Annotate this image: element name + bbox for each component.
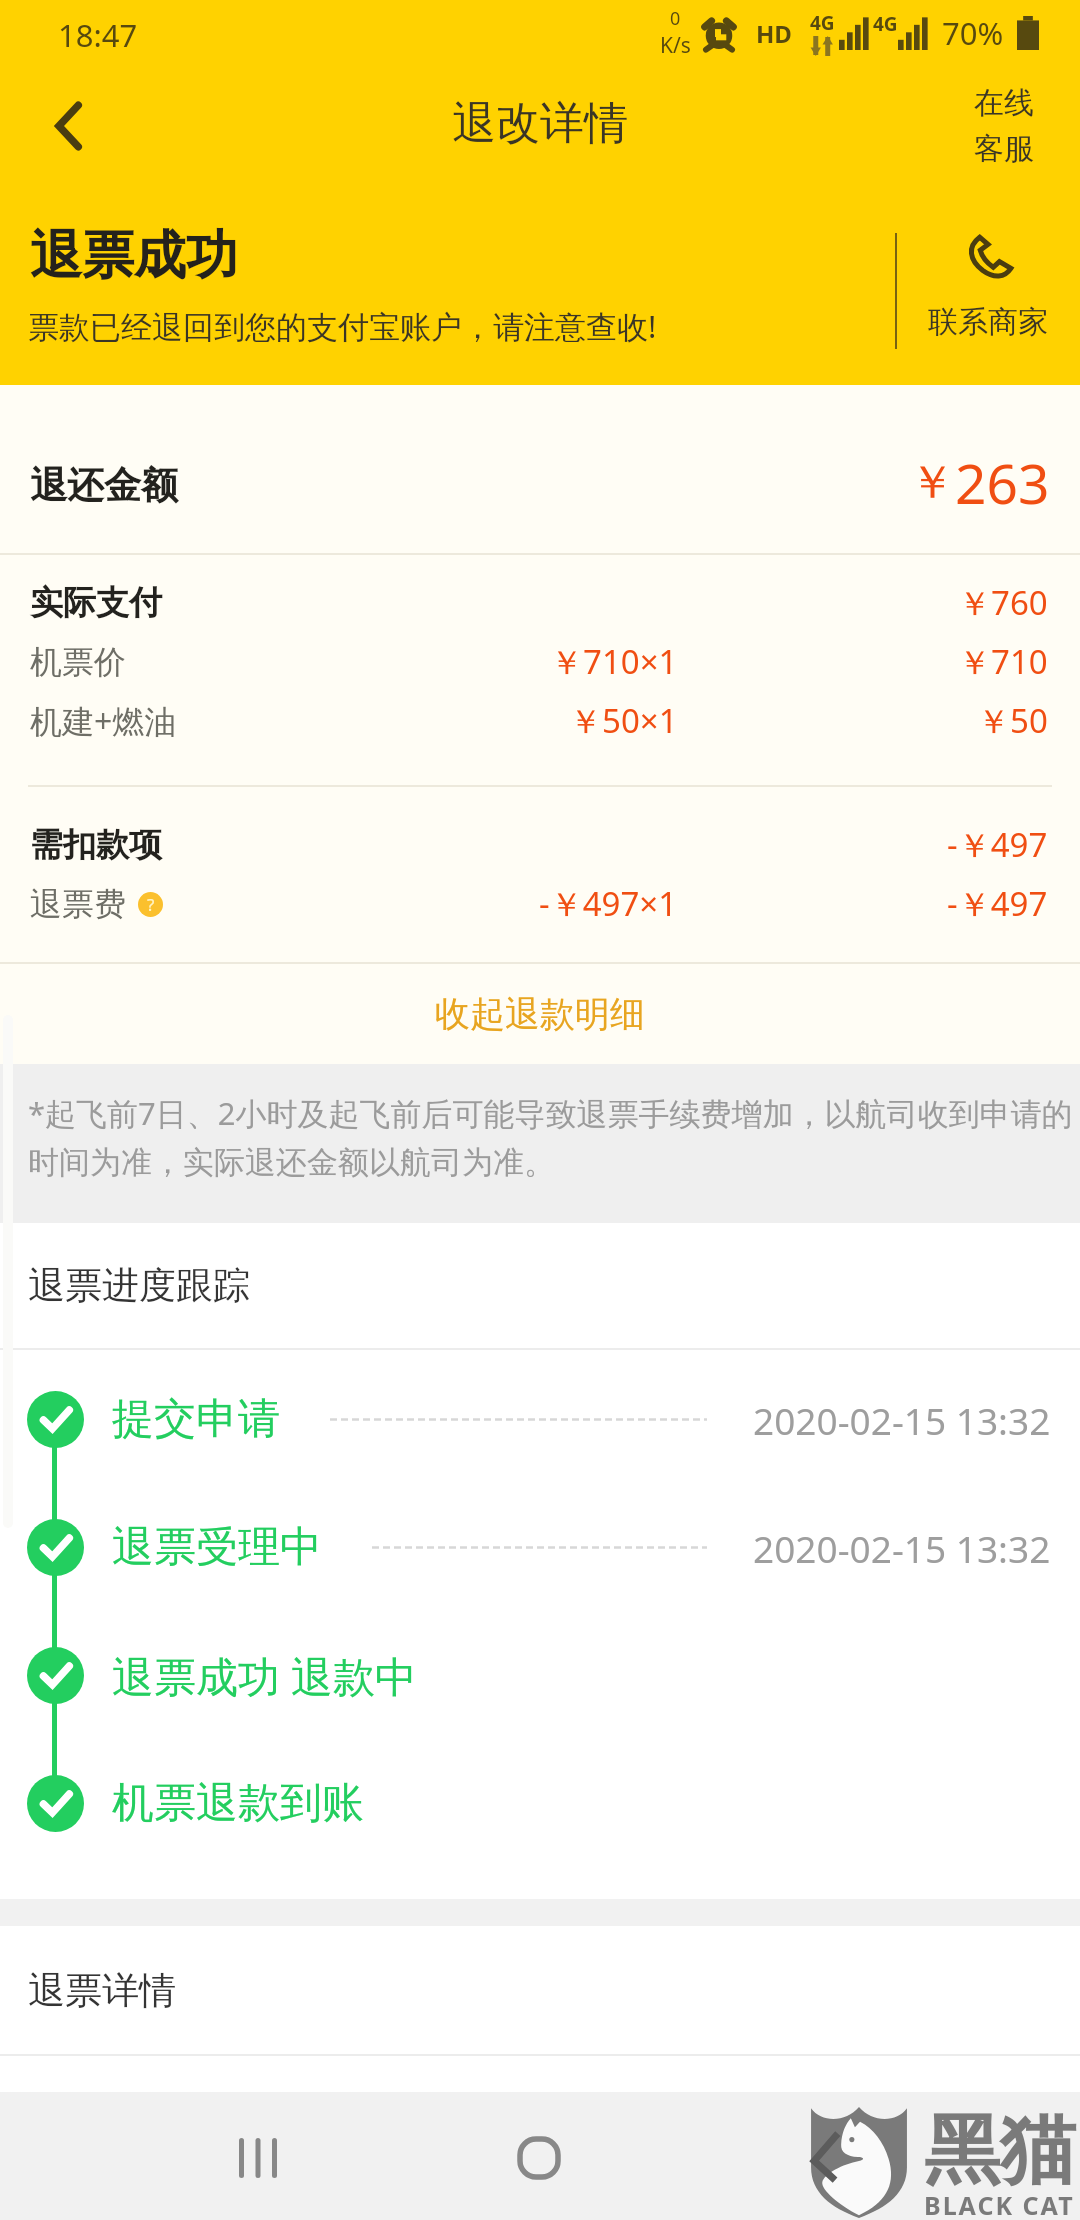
staticText: 客服 xyxy=(974,130,1034,168)
button[interactable]: 在线 xyxy=(974,84,1034,168)
staticText: 2020-02-15 13:32 xyxy=(753,1395,1051,1445)
staticText: 在线 xyxy=(974,84,1034,122)
staticText: 退票详情 xyxy=(28,1967,176,2014)
button[interactable]: 联系商家 xyxy=(912,233,1064,341)
staticText: 机票退款到账 xyxy=(112,1777,364,1830)
staticText: 联系商家 xyxy=(928,303,1048,341)
staticText: -￥497 xyxy=(947,881,1048,926)
staticText: ￥710 xyxy=(958,639,1048,684)
staticText: ￥50×1 xyxy=(569,698,678,743)
staticText: 收起退款明细 xyxy=(435,992,645,1036)
button[interactable]: Home xyxy=(499,2118,579,2198)
staticText: 4G xyxy=(810,10,835,36)
button[interactable]: 退票成功 退款中 xyxy=(0,1611,1080,1739)
button[interactable]: 退票受理中 xyxy=(0,1483,1080,1611)
staticText: ￥710×1 xyxy=(550,639,678,684)
staticText: 机票价 xyxy=(30,642,126,682)
staticText: 18:47 xyxy=(58,14,138,56)
staticText: 退票成功 退款中 xyxy=(112,1647,417,1704)
staticText: ￥760 xyxy=(958,580,1048,625)
button[interactable]: 提交申请 xyxy=(0,1355,1080,1483)
staticText: 需扣款项 xyxy=(30,824,162,866)
staticText: 退还金额 xyxy=(30,462,178,509)
staticText: 2020-02-15 13:32 xyxy=(753,1523,1051,1573)
staticText: 70% xyxy=(942,12,1004,54)
staticText: 黑猫 xyxy=(924,2103,1076,2199)
staticText: -￥497×1 xyxy=(539,881,678,926)
staticText: 4G xyxy=(873,11,898,37)
staticText: 机建+燃油 xyxy=(30,699,177,743)
staticText: 退改详情 xyxy=(452,96,628,151)
staticText: ￥ xyxy=(909,454,955,512)
button[interactable]: Recent apps xyxy=(218,2118,298,2198)
button[interactable]: Back xyxy=(25,81,115,171)
button[interactable]: 收起退款明细 xyxy=(0,964,1080,1064)
button[interactable]: Help xyxy=(138,892,163,917)
staticText: 退票费 xyxy=(30,884,126,924)
staticText: ? xyxy=(147,893,155,916)
staticText: BLACK CAT xyxy=(924,2188,1075,2220)
staticText: *起飞前7日、2小时及起飞前后可能导致退票手续费增加，以航司收到申请的 时间为准… xyxy=(28,1092,1073,1182)
staticText: 提交申请 xyxy=(112,1393,280,1446)
staticText: -￥497 xyxy=(947,822,1048,867)
button[interactable]: 退票详情 xyxy=(0,1926,1080,2054)
button[interactable]: 退票进度跟踪 xyxy=(0,1223,1080,1348)
staticText: 实际支付 xyxy=(30,582,162,624)
staticText: 退票受理中 xyxy=(112,1521,322,1574)
staticText: K/s xyxy=(660,31,691,60)
staticText: 票款已经退回到您的支付宝账户，请注意查收! xyxy=(28,305,657,347)
staticText: 退票进度跟踪 xyxy=(28,1262,250,1309)
button[interactable]: 机票退款到账 xyxy=(0,1739,1080,1867)
staticText: 退票成功 xyxy=(30,223,238,289)
staticText: 0 xyxy=(670,6,681,31)
staticText: HD xyxy=(756,17,792,50)
staticText: ￥50 xyxy=(977,698,1048,743)
staticText: 263 xyxy=(955,445,1050,520)
